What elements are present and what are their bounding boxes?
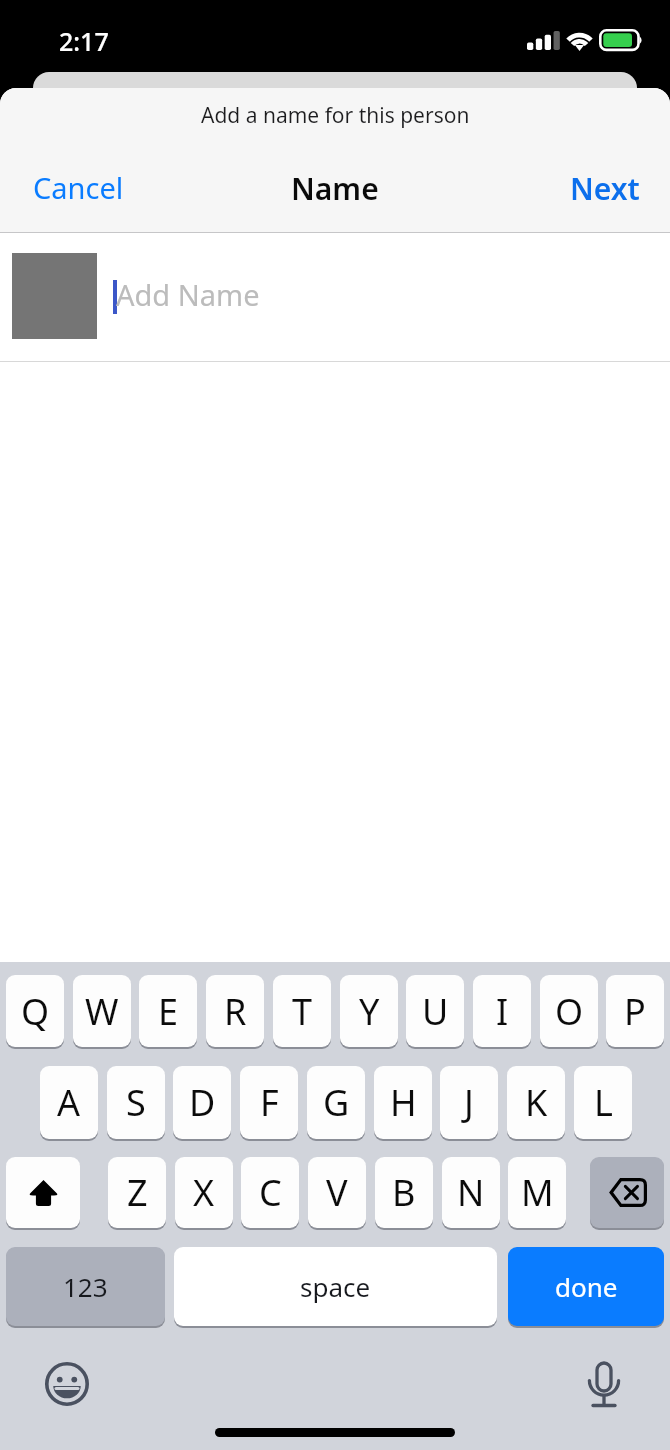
- button[interactable]: D: [173, 1066, 231, 1139]
- button[interactable]: Cancel: [12, 158, 145, 217]
- staticText: B: [392, 1168, 416, 1217]
- button[interactable]: I: [473, 975, 531, 1047]
- staticText: Next: [570, 168, 640, 209]
- staticText: 2:17: [59, 24, 109, 58]
- button[interactable]: Z: [108, 1157, 166, 1228]
- staticText: O: [555, 987, 584, 1036]
- staticText: G: [323, 1078, 350, 1127]
- staticText: Add a name for this person: [201, 101, 470, 130]
- button[interactable]: L: [574, 1066, 632, 1139]
- staticText: I: [496, 987, 509, 1036]
- button[interactable]: S: [107, 1066, 165, 1139]
- staticText: N: [457, 1168, 485, 1217]
- button[interactable]: Emoji: [36, 1353, 98, 1415]
- staticText: S: [126, 1078, 146, 1127]
- staticText: D: [189, 1078, 216, 1127]
- button[interactable]: A: [40, 1066, 98, 1139]
- button[interactable]: V: [308, 1157, 366, 1228]
- button[interactable]: K: [507, 1066, 565, 1139]
- staticText: U: [422, 987, 449, 1036]
- staticText: Name: [291, 168, 379, 209]
- staticText: Add Name: [116, 275, 260, 314]
- button[interactable]: U: [406, 975, 464, 1047]
- staticText: Y: [359, 987, 380, 1036]
- button[interactable]: F: [240, 1066, 298, 1139]
- staticText: T: [292, 987, 313, 1036]
- button[interactable]: E: [139, 975, 197, 1047]
- button[interactable]: P: [606, 975, 664, 1047]
- staticText: C: [259, 1168, 282, 1217]
- staticText: W: [85, 987, 119, 1036]
- staticText: K: [525, 1078, 548, 1127]
- button[interactable]: H: [374, 1066, 432, 1139]
- staticText: P: [624, 987, 646, 1036]
- staticText: 123: [63, 1269, 108, 1304]
- button[interactable]: 123: [6, 1247, 165, 1326]
- staticText: R: [224, 987, 247, 1036]
- button[interactable]: done: [508, 1247, 664, 1326]
- button[interactable]: Backspace: [590, 1157, 664, 1228]
- button[interactable]: M: [508, 1157, 566, 1228]
- staticText: E: [158, 987, 179, 1036]
- button[interactable]: J: [440, 1066, 498, 1139]
- button[interactable]: Q: [6, 975, 64, 1047]
- staticText: Z: [127, 1168, 148, 1217]
- button[interactable]: W: [73, 975, 131, 1047]
- button[interactable]: C: [241, 1157, 299, 1228]
- button[interactable]: X: [175, 1157, 233, 1228]
- staticText: Cancel: [33, 168, 124, 207]
- staticText: F: [260, 1078, 279, 1127]
- staticText: M: [521, 1168, 554, 1217]
- staticText: J: [464, 1078, 474, 1127]
- staticText: done: [555, 1269, 618, 1304]
- button[interactable]: B: [375, 1157, 433, 1228]
- staticText: Q: [21, 987, 50, 1036]
- button[interactable]: T: [273, 975, 331, 1047]
- staticText: H: [390, 1078, 417, 1127]
- button[interactable]: R: [206, 975, 264, 1047]
- button[interactable]: Next: [549, 158, 661, 219]
- staticText: space: [300, 1269, 371, 1304]
- button[interactable]: Shift: [6, 1157, 80, 1228]
- button[interactable]: Y: [340, 975, 398, 1047]
- button[interactable]: G: [307, 1066, 365, 1139]
- staticText: V: [326, 1168, 348, 1217]
- staticText: A: [57, 1078, 81, 1127]
- staticText: X: [193, 1168, 215, 1217]
- staticText: L: [594, 1078, 613, 1127]
- button[interactable]: Dictation: [573, 1353, 635, 1415]
- button[interactable]: O: [540, 975, 598, 1047]
- button[interactable]: N: [442, 1157, 500, 1228]
- button[interactable]: space: [174, 1247, 497, 1326]
